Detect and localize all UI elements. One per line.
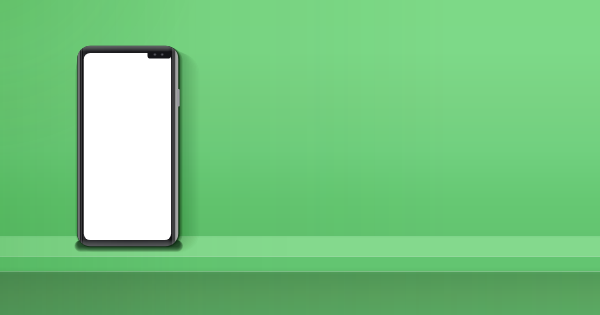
button[interactable]: Smartphone mockup on a green wall shelf bbox=[0, 0, 600, 315]
